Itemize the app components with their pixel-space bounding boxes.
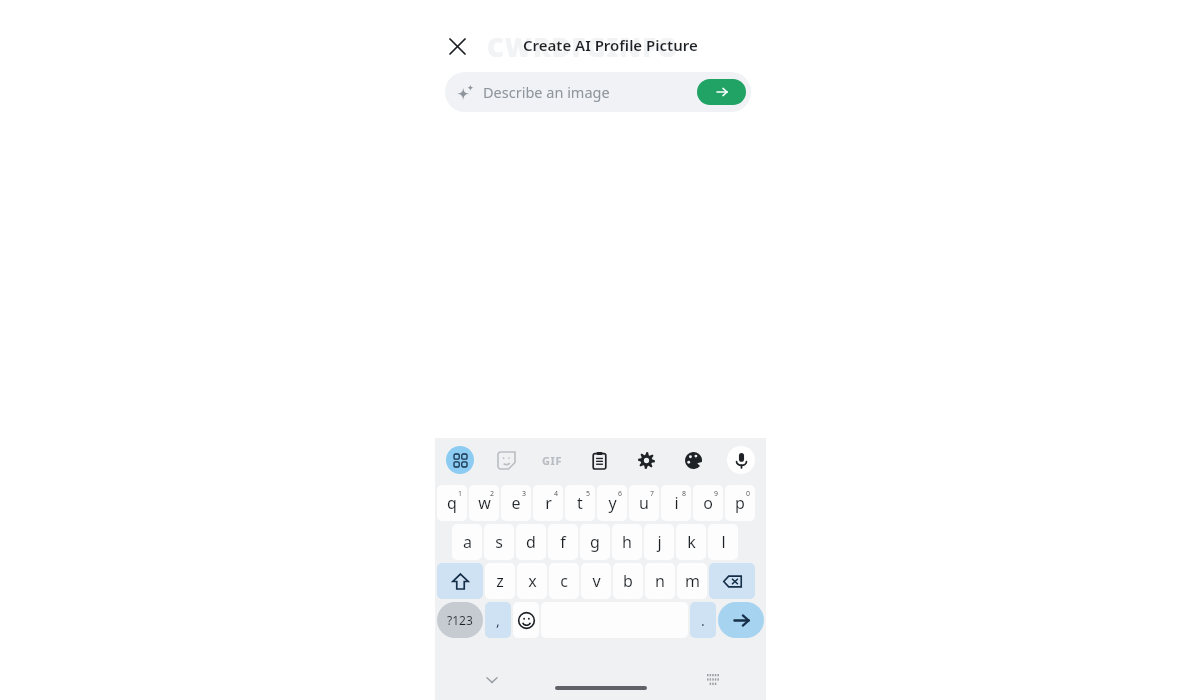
staticText: c (560, 570, 568, 592)
staticText: . (701, 611, 705, 630)
staticText: h (622, 531, 632, 553)
staticText: p (735, 492, 745, 514)
staticText: ?123 (447, 612, 473, 628)
staticText: 6 (618, 489, 623, 499)
button[interactable]: r (533, 485, 563, 521)
staticText: t (577, 492, 583, 514)
staticText: l (721, 531, 726, 553)
button[interactable]: m (677, 563, 707, 599)
staticText: m (685, 570, 700, 592)
staticText: 1 (458, 489, 463, 499)
staticText: f (560, 531, 566, 553)
staticText: 0 (746, 489, 751, 499)
staticText: a (463, 531, 472, 553)
staticText: 2 (490, 489, 495, 499)
button[interactable]: Enter (718, 602, 764, 638)
button[interactable]: Hide keyboard (473, 660, 511, 700)
button[interactable]: i (661, 485, 691, 521)
staticText: 5 (586, 489, 591, 499)
staticText: k (687, 531, 696, 553)
button[interactable]: j (644, 524, 674, 560)
button[interactable]: q (437, 485, 467, 521)
button[interactable]: l (708, 524, 738, 560)
staticText: v (592, 570, 601, 592)
staticText: , (496, 611, 500, 630)
button[interactable]: , (485, 602, 511, 638)
staticText: o (703, 492, 713, 514)
button[interactable]: Voice input (727, 446, 755, 474)
staticText: s (495, 531, 503, 553)
button[interactable]: Switch keyboard (696, 660, 730, 700)
button[interactable]: Settings (623, 438, 670, 482)
staticText: d (526, 531, 536, 553)
staticText: i (674, 492, 679, 514)
button[interactable]: g (580, 524, 610, 560)
staticText: 4 (554, 489, 559, 499)
staticText: u (639, 492, 649, 514)
button[interactable]: Apps (437, 438, 483, 482)
button[interactable]: k (676, 524, 706, 560)
staticText: g (590, 531, 600, 553)
staticText: b (623, 570, 633, 592)
button[interactable]: p (725, 485, 755, 521)
button[interactable]: Shift (437, 563, 483, 599)
staticText: z (496, 570, 504, 592)
staticText: 3 (522, 489, 527, 499)
button[interactable]: s (484, 524, 514, 560)
button[interactable]: y (597, 485, 627, 521)
button[interactable]: a (452, 524, 482, 560)
button[interactable]: GIF (529, 438, 576, 482)
staticText: CWRDFGINFO (487, 29, 679, 64)
button[interactable]: u (629, 485, 659, 521)
button[interactable]: Close (441, 30, 473, 62)
button[interactable]: Describe an image (445, 72, 751, 112)
button[interactable]: Generate (697, 79, 746, 105)
button[interactable]: Create AI Profile Picture (523, 35, 698, 55)
button[interactable]: h (612, 524, 642, 560)
button[interactable]: b (613, 563, 643, 599)
button[interactable]: c (549, 563, 579, 599)
button[interactable]: v (581, 563, 611, 599)
staticText: j (657, 531, 662, 553)
button[interactable]: w (469, 485, 499, 521)
staticText: y (608, 492, 617, 514)
staticText: x (528, 570, 537, 592)
button[interactable]: o (693, 485, 723, 521)
button[interactable]: z (485, 563, 515, 599)
staticText: r (545, 492, 552, 514)
button[interactable]: Emoji (513, 602, 539, 638)
button[interactable]: . (690, 602, 716, 638)
staticText: q (447, 492, 457, 514)
button[interactable]: Clipboard (576, 438, 623, 482)
button[interactable]: e (501, 485, 531, 521)
staticText: w (478, 492, 491, 514)
button[interactable]: n (645, 563, 675, 599)
staticText: 8 (682, 489, 687, 499)
staticText: e (511, 492, 521, 514)
button[interactable]: f (548, 524, 578, 560)
button[interactable]: x (517, 563, 547, 599)
staticText: GIF (542, 453, 563, 468)
staticText: Describe an image (483, 82, 610, 102)
button[interactable]: ?123 (437, 602, 483, 638)
button[interactable]: t (565, 485, 595, 521)
button[interactable]: d (516, 524, 546, 560)
button[interactable]: Themes (670, 438, 717, 482)
staticText: 7 (650, 489, 655, 499)
staticText: n (655, 570, 665, 592)
button[interactable]: Stickers (483, 438, 529, 482)
button[interactable]: Backspace (709, 563, 755, 599)
staticText: 9 (714, 489, 719, 499)
